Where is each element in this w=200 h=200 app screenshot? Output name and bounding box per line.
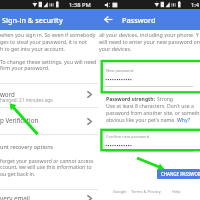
staticText: Help (172, 189, 181, 194)
staticText: Use at least 8 characters. Don't use a (106, 103, 194, 110)
staticText: CHANGE PASSWOR (161, 171, 200, 177)
staticText: forget your password or cannot access (0, 157, 94, 164)
staticText: To change these settings, you will need (0, 58, 97, 65)
staticText: New password (106, 68, 134, 73)
staticText: word (0, 90, 15, 98)
button[interactable]: p Verification (0, 108, 98, 134)
button[interactable]: CHANGE PASSWOR (157, 169, 200, 179)
staticText: Password strength: (106, 96, 156, 103)
staticText: Strong (157, 96, 173, 103)
button[interactable]: very email (0, 190, 98, 200)
staticText: all your devices, including your phone. … (99, 31, 199, 38)
staticText: obvious like your pet's name. (106, 117, 177, 124)
staticText: password from another site, or somethin (106, 110, 200, 117)
staticText: your devices. (99, 45, 132, 52)
staticText: Why? (177, 117, 191, 124)
staticText: very email (0, 194, 30, 200)
staticText: unt recovery options (0, 143, 54, 150)
staticText: Terms & Privacy (131, 189, 161, 194)
staticText: Confirm new password (106, 134, 150, 139)
staticText: p Verification (0, 116, 39, 124)
staticText: 1:38 PM (69, 1, 91, 9)
staticText: Google (113, 189, 127, 194)
staticText: •••••••••••• (105, 142, 133, 150)
button[interactable]: Back (103, 14, 114, 25)
staticText: when you sign in. So even if somebody (0, 31, 96, 38)
staticText: 1:4 (191, 1, 200, 9)
staticText: ges to steal your password, it is not (0, 38, 87, 45)
staticText: ccount, we will use this information to (0, 163, 92, 170)
staticText: Sign-in & security (2, 15, 63, 25)
staticText: firm your password. (0, 64, 50, 71)
button[interactable]: word (0, 84, 98, 107)
staticText: •••••••••••• (105, 76, 133, 84)
staticText: Password (122, 15, 156, 25)
staticText: h to get into your account. (0, 45, 66, 52)
staticText: will need to enter your new password on (99, 38, 200, 45)
staticText: ou get back in. (0, 170, 36, 177)
staticText: hanged: 21 minutes ago (0, 97, 53, 103)
